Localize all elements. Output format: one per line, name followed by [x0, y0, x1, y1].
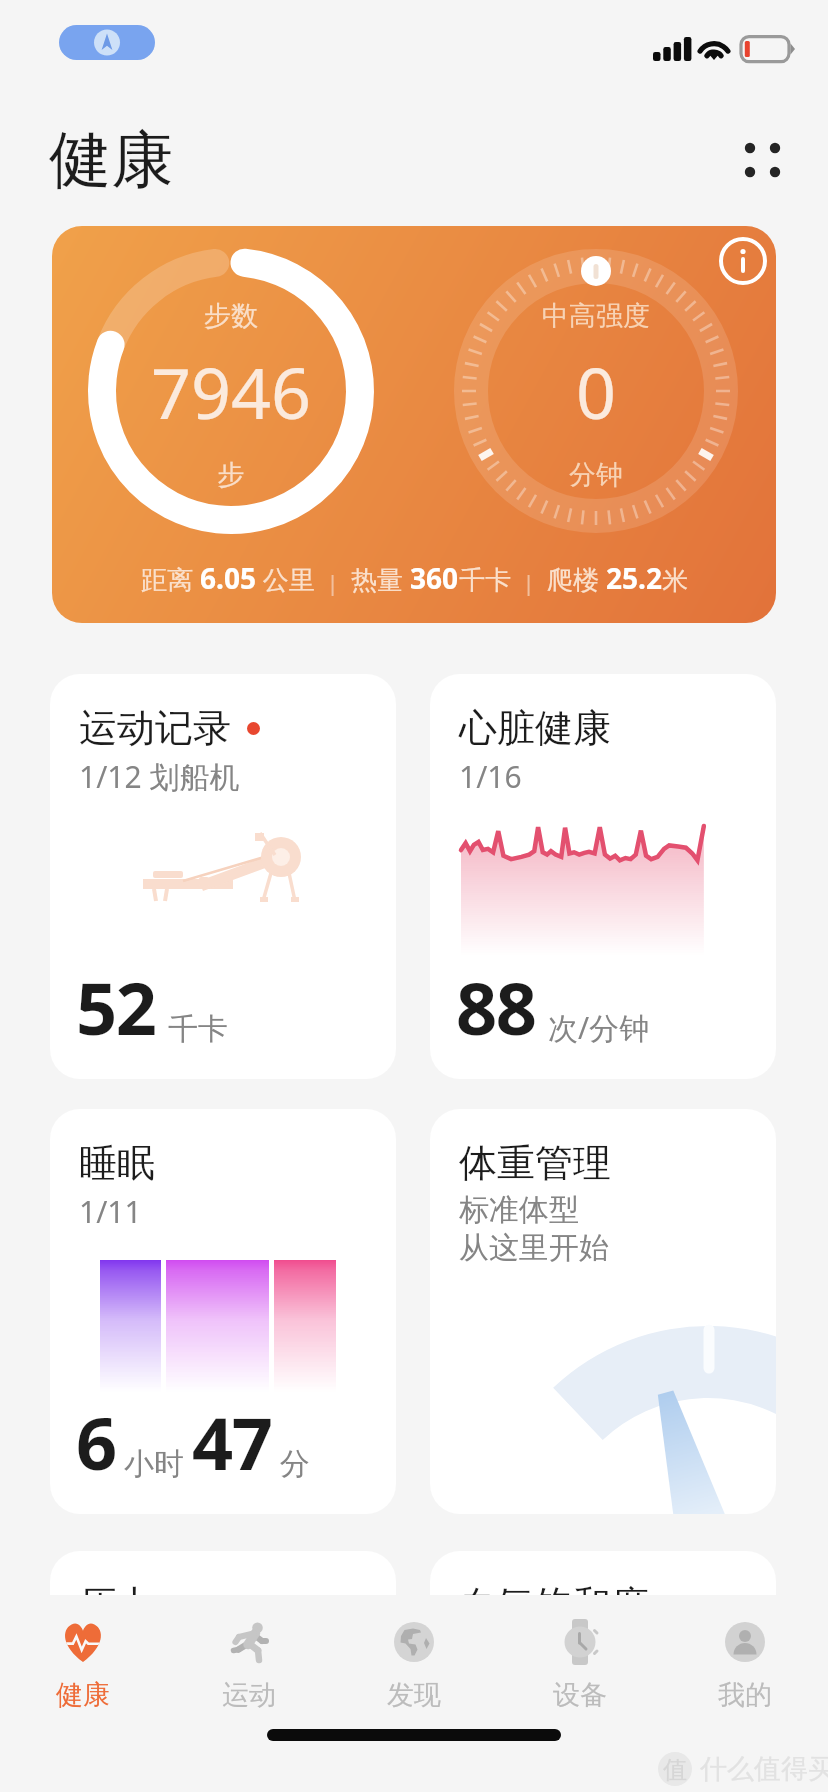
staticText: 睡眠 — [79, 1139, 155, 1187]
button[interactable]: 血氧饱和度 — [430, 1551, 776, 1751]
staticText: 血氧饱和度 — [459, 1581, 649, 1629]
staticText: 1/12 划船机 — [79, 756, 240, 797]
staticText: 热量 — [351, 561, 410, 597]
staticText: 千卡 — [459, 564, 511, 597]
button[interactable]: 体重管理 — [430, 1109, 776, 1514]
staticText: 什么值得买 — [700, 1752, 828, 1786]
staticText: 360 — [410, 559, 459, 597]
staticText: 标准体型 — [459, 1191, 579, 1229]
staticText: 88 — [456, 958, 536, 1056]
staticText: 47 — [192, 1393, 272, 1491]
button[interactable]: 运动记录 — [50, 674, 396, 1079]
staticText: 6 — [76, 1393, 116, 1491]
staticText: 步 — [81, 458, 381, 492]
staticText: 健康 — [49, 121, 173, 199]
staticText: 压力 — [79, 1581, 155, 1629]
staticText: 爬楼 — [547, 561, 606, 597]
staticText: 设备 — [553, 1678, 607, 1712]
staticText: 从这里开始 — [459, 1229, 609, 1267]
staticText: 分钟 — [446, 458, 746, 492]
staticText: 中高强度 — [446, 299, 746, 333]
button[interactable]: 健康 — [0, 1595, 166, 1720]
button[interactable]: More options — [722, 120, 804, 202]
staticText: 运动记录 — [79, 704, 231, 752]
staticText: | — [315, 567, 351, 597]
staticText: 次/分钟 — [548, 1007, 650, 1048]
staticText: 发现 — [387, 1678, 441, 1712]
button[interactable]: 运动 — [166, 1595, 332, 1720]
button[interactable]: 睡眠 — [50, 1109, 396, 1514]
button[interactable]: Location active — [59, 25, 155, 60]
staticText: 小时 — [124, 1445, 184, 1483]
staticText: 距离 — [141, 561, 200, 597]
button[interactable]: 心脏健康 — [430, 674, 776, 1079]
button[interactable]: 压力 — [50, 1551, 396, 1751]
staticText: 6.05 — [200, 559, 256, 597]
staticText: 步数 — [81, 299, 381, 333]
staticText: 1/11 — [79, 1191, 142, 1232]
staticText: | — [511, 567, 547, 597]
staticText: 25.2 — [606, 559, 662, 597]
button[interactable]: 发现 — [331, 1595, 497, 1720]
staticText: 公里 — [256, 561, 315, 597]
staticText: 7946 — [81, 344, 381, 439]
staticText: 分 — [280, 1445, 310, 1483]
button[interactable]: 设备 — [497, 1595, 663, 1720]
staticText: 健康 — [56, 1678, 110, 1712]
staticText: 心脏健康 — [459, 704, 611, 752]
staticText: 0 — [446, 344, 746, 439]
staticText: 52 — [76, 958, 156, 1056]
button[interactable]: Info — [711, 229, 775, 293]
button[interactable]: 步数 — [52, 226, 776, 623]
staticText: 体重管理 — [459, 1139, 611, 1187]
staticText: 值 — [663, 1755, 687, 1785]
staticText: 千卡 — [168, 1010, 228, 1048]
staticText: 我的 — [718, 1678, 772, 1712]
staticText: 运动 — [222, 1678, 276, 1712]
staticText: 1/16 — [459, 756, 522, 797]
button[interactable]: 我的 — [662, 1595, 828, 1720]
staticText: 米 — [662, 564, 688, 597]
